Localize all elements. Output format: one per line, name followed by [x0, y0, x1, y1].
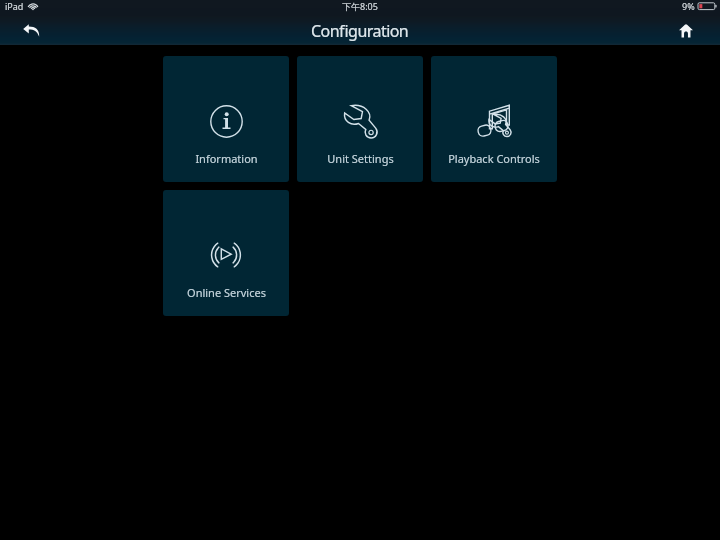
- button[interactable]: Information: [163, 56, 289, 182]
- staticText: Playback Controls: [448, 151, 540, 166]
- button[interactable]: Back: [16, 16, 48, 45]
- staticText: iPad: [5, 0, 24, 12]
- staticText: Online Services: [187, 285, 266, 300]
- button[interactable]: Online Services: [163, 190, 289, 316]
- button[interactable]: Playback Controls: [431, 56, 557, 182]
- button[interactable]: Home: [670, 16, 702, 45]
- staticText: 9%: [682, 0, 695, 12]
- button[interactable]: Unit Settings: [297, 56, 423, 182]
- staticText: 下午8:05: [342, 0, 378, 12]
- staticText: Information: [195, 151, 258, 166]
- staticText: Configuration: [311, 20, 409, 42]
- staticText: Unit Settings: [327, 151, 394, 166]
